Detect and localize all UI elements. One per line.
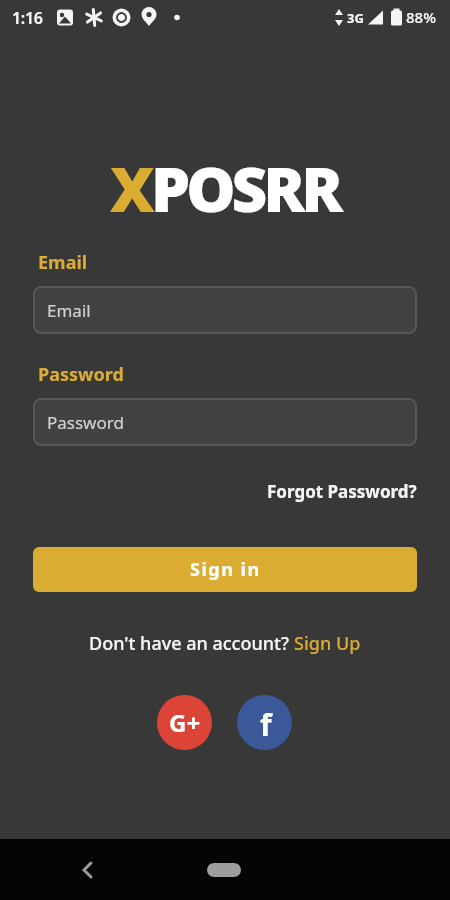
button[interactable]: Sign in <box>33 547 417 592</box>
staticText: Forgot Password? <box>267 480 417 503</box>
button[interactable] <box>71 854 103 886</box>
staticText: 88% <box>406 7 436 27</box>
button[interactable] <box>207 863 241 877</box>
staticText: X <box>110 146 151 230</box>
staticText: Email <box>47 299 91 322</box>
staticText: Don't have an account? <box>89 631 294 656</box>
staticText: Password <box>38 362 124 387</box>
staticText: POSRR <box>151 146 340 230</box>
button[interactable]: Sign Up <box>294 631 361 656</box>
staticText: Sign in <box>190 557 261 582</box>
staticText: 3G <box>347 9 364 27</box>
staticText: Email <box>38 250 88 275</box>
staticText: 1:16 <box>12 7 43 29</box>
button[interactable]: G+ <box>157 695 212 750</box>
staticText: Sign Up <box>294 631 361 656</box>
staticText: Password <box>47 411 124 434</box>
button[interactable]: Password <box>33 398 417 446</box>
button[interactable]: Email <box>33 286 417 334</box>
button[interactable]: f <box>237 695 292 750</box>
button[interactable]: Forgot Password? <box>267 480 417 503</box>
staticText: G+ <box>169 706 201 739</box>
staticText: f <box>260 704 272 745</box>
